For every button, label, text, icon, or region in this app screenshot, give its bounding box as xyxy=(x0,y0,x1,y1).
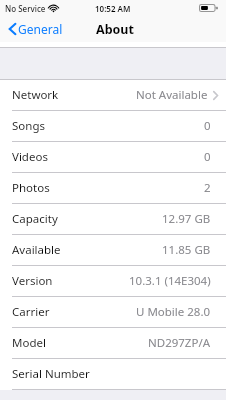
staticText: Serial Number xyxy=(12,366,90,382)
button[interactable]: Back xyxy=(0,16,69,42)
staticText: ND297ZP/A xyxy=(148,335,211,351)
staticText: 10:52 AM xyxy=(95,3,131,14)
button[interactable]: Serial Number xyxy=(0,359,226,389)
staticText: Videos xyxy=(12,149,48,165)
staticText: 10.3.1 (14E304) xyxy=(129,273,211,289)
staticText: Available xyxy=(12,242,61,258)
staticText: 0 xyxy=(204,118,211,134)
button[interactable]: Carrier xyxy=(0,297,226,327)
staticText: U Mobile 28.0 xyxy=(136,304,211,320)
button[interactable]: Songs xyxy=(0,111,226,141)
staticText: Version xyxy=(12,273,53,289)
staticText: Model xyxy=(12,335,46,351)
button[interactable]: Model xyxy=(0,328,226,358)
staticText: 12.97 GB xyxy=(162,211,211,227)
button[interactable]: Version xyxy=(0,266,226,296)
button[interactable]: Available xyxy=(0,235,226,265)
staticText: Network xyxy=(12,87,59,103)
staticText: Photos xyxy=(12,180,50,196)
staticText: Capacity xyxy=(12,211,58,227)
staticText: Songs xyxy=(12,118,45,134)
staticText: General xyxy=(18,21,63,37)
staticText: 11.85 GB xyxy=(162,242,211,258)
staticText: About xyxy=(96,21,134,38)
other: Back xyxy=(9,23,16,35)
staticText: 0 xyxy=(204,149,211,165)
button[interactable]: Network xyxy=(0,80,226,110)
button[interactable]: Videos xyxy=(0,142,226,172)
staticText: Carrier xyxy=(12,304,50,320)
button[interactable]: Photos xyxy=(0,173,226,203)
staticText: 2 xyxy=(204,180,211,196)
staticText: No Service xyxy=(5,3,46,14)
staticText: Not Available xyxy=(136,87,208,103)
button[interactable]: Capacity xyxy=(0,204,226,234)
